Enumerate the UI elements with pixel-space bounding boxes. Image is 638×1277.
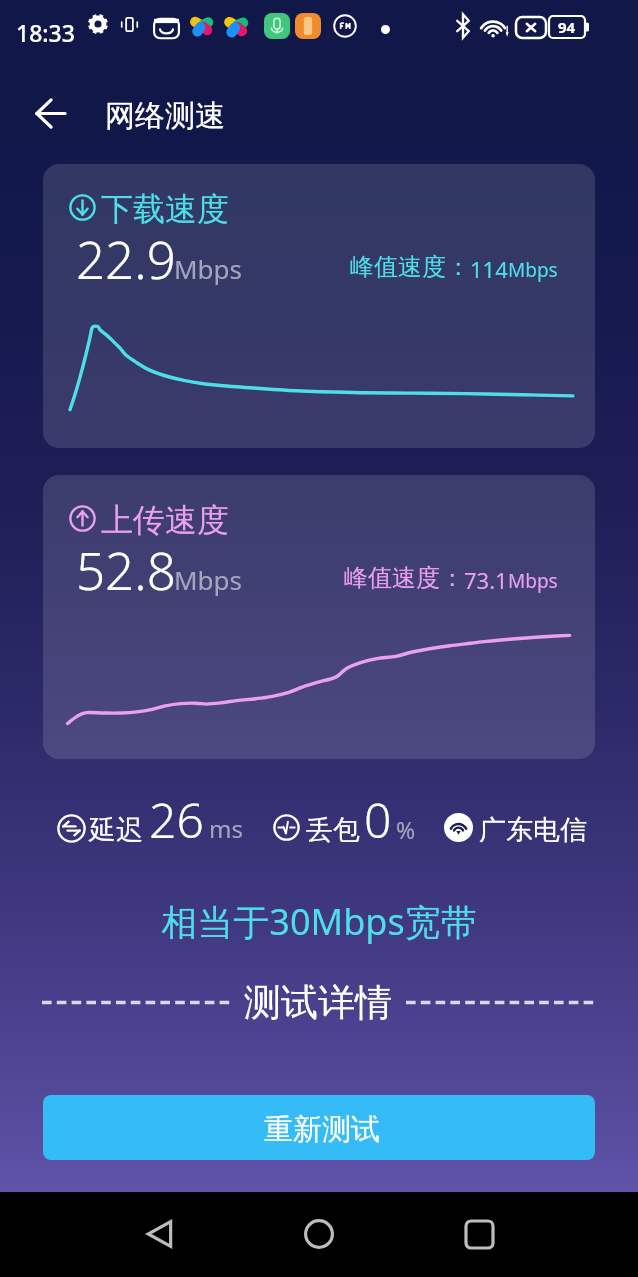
staticText: 广东电信 <box>479 813 587 847</box>
staticText: 上传速度 <box>101 500 229 540</box>
staticText: 52.8 <box>76 535 176 604</box>
staticText: 18:33 <box>16 17 75 48</box>
button[interactable]: 重新测试 <box>43 1095 595 1160</box>
button[interactable]: 上传速度 <box>43 475 595 759</box>
button[interactable]: Recent apps <box>439 1194 519 1274</box>
staticText: 22.9 <box>76 224 176 293</box>
staticText: 峰值速度： <box>350 252 470 282</box>
staticText: Mbps <box>508 257 558 283</box>
staticText: 114 <box>470 254 508 284</box>
staticText: 0 <box>364 787 392 852</box>
staticText: 26 <box>149 787 204 852</box>
staticText: ms <box>209 812 243 845</box>
staticText: 网络测速 <box>105 97 225 135</box>
staticText: 重新测试 <box>264 1111 380 1148</box>
staticText: 丢包 <box>306 813 360 847</box>
staticText: 延迟 <box>89 813 143 847</box>
staticText: 73.1 <box>464 565 508 595</box>
staticText: Mbps <box>174 251 243 286</box>
button[interactable]: 测试详情 <box>244 979 392 1026</box>
staticText: Mbps <box>508 568 558 594</box>
staticText: 峰值速度： <box>344 563 464 593</box>
staticText: Mbps <box>174 562 243 597</box>
button[interactable]: Back <box>120 1194 200 1274</box>
staticText: 下载速度 <box>101 189 229 229</box>
button[interactable]: Back <box>21 84 79 142</box>
staticText: 94 <box>558 17 576 37</box>
staticText: 相当于30Mbps宽带 <box>0 897 638 946</box>
staticText: 测试详情 <box>244 979 392 1026</box>
button[interactable]: 下载速度 <box>43 164 595 448</box>
button[interactable]: Home <box>279 1194 359 1274</box>
staticText: % <box>396 814 416 845</box>
